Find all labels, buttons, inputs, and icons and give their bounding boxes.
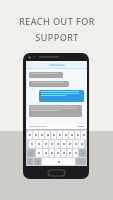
button[interactable]: Keyboard key xyxy=(67,149,72,157)
button[interactable]: Keyboard key xyxy=(57,131,62,139)
button[interactable] xyxy=(29,105,82,117)
button[interactable]: Keyboard key xyxy=(81,131,86,139)
button[interactable]: Keyboard key xyxy=(75,131,80,139)
button[interactable]: Keyboard key xyxy=(43,149,48,157)
button[interactable]: Keyboard key xyxy=(49,140,54,148)
button[interactable]: Keyboard key xyxy=(39,131,44,139)
staticText: REACH OUT FOR xyxy=(19,15,95,27)
button[interactable]: Keyboard key xyxy=(27,149,35,157)
button[interactable]: Keyboard key xyxy=(27,131,32,139)
button[interactable]: Phone showing a support chat xyxy=(23,53,89,179)
button[interactable]: Keyboard key xyxy=(34,158,41,165)
button[interactable]: Keyboard key xyxy=(61,149,66,157)
button[interactable]: Keyboard key xyxy=(36,140,42,148)
button[interactable]: Keyboard key xyxy=(79,149,86,157)
button[interactable]: Keyboard key xyxy=(73,149,78,157)
button[interactable] xyxy=(29,81,69,87)
button[interactable]: Keyboard key xyxy=(73,140,78,148)
button[interactable]: Keyboard key xyxy=(27,158,33,165)
button[interactable]: Keyboard key xyxy=(36,149,42,157)
button[interactable]: Keyboard key xyxy=(76,158,86,165)
button[interactable]: Keyboard key xyxy=(63,131,68,139)
button[interactable] xyxy=(29,72,63,78)
button[interactable]: Keyboard key xyxy=(67,140,72,148)
button[interactable]: Keyboard key xyxy=(69,131,74,139)
button[interactable]: Keyboard key xyxy=(55,149,60,157)
button[interactable]: Keyboard key xyxy=(79,140,84,148)
button[interactable]: Type a message xyxy=(26,124,87,129)
button[interactable]: Conversation title xyxy=(26,61,87,68)
button[interactable]: Keyboard key xyxy=(33,131,38,139)
button[interactable]: Keyboard key xyxy=(29,140,35,148)
button[interactable]: Keyboard key xyxy=(49,149,54,157)
button[interactable]: Keyboard key xyxy=(43,140,48,148)
button[interactable]: Keyboard key xyxy=(42,158,75,165)
button[interactable] xyxy=(39,90,84,102)
staticText: SUPPORT xyxy=(35,31,79,43)
button[interactable]: Keyboard key xyxy=(61,140,66,148)
button[interactable]: Keyboard key xyxy=(55,140,60,148)
button[interactable]: Keyboard key xyxy=(45,131,50,139)
button[interactable]: Home button xyxy=(48,170,65,176)
button[interactable]: Keyboard key xyxy=(51,131,56,139)
